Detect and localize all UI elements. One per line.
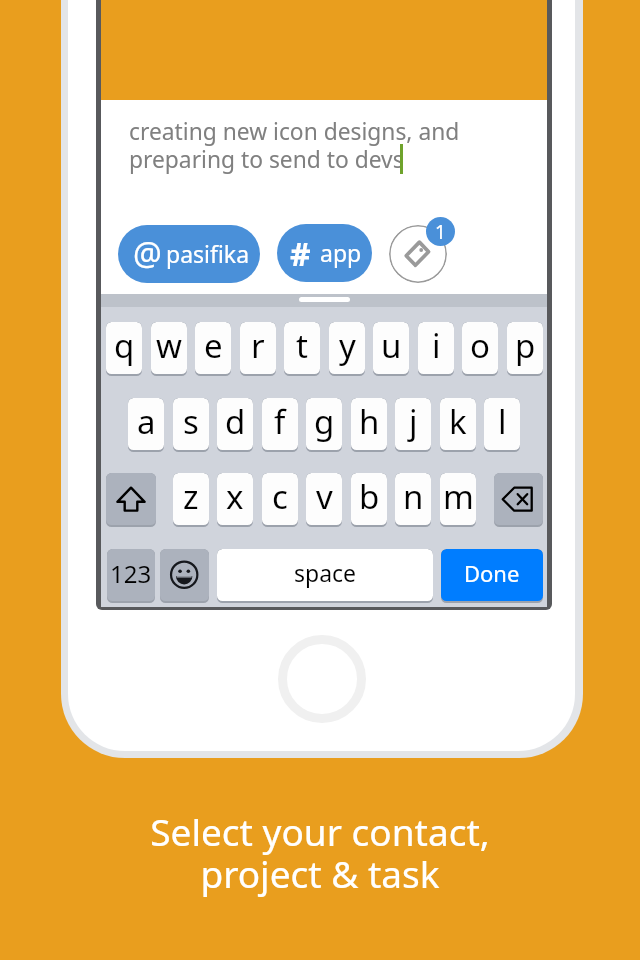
staticText: r	[251, 323, 265, 368]
staticText: creating new icon designs, and preparing…	[129, 116, 460, 175]
button[interactable]: y	[329, 322, 365, 376]
staticText: 123	[110, 557, 152, 590]
staticText: k	[449, 399, 467, 444]
button[interactable]: w	[151, 322, 187, 376]
button[interactable]: l	[484, 398, 520, 452]
staticText: y	[339, 323, 356, 368]
staticText: c	[272, 474, 288, 519]
staticText: @	[133, 232, 162, 276]
button[interactable]: #	[277, 224, 372, 282]
staticText: e	[204, 323, 223, 368]
staticText: q	[114, 323, 135, 368]
staticText: d	[225, 399, 246, 444]
button[interactable]: a	[128, 398, 164, 452]
staticText: x	[226, 474, 244, 519]
staticText: z	[183, 474, 199, 519]
button[interactable]: g	[306, 398, 342, 452]
staticText: m	[443, 474, 474, 519]
staticText: u	[381, 323, 402, 368]
staticText: g	[314, 399, 335, 444]
staticText: h	[359, 399, 380, 444]
staticText: p	[515, 323, 536, 368]
button[interactable]: @	[118, 225, 260, 283]
staticText: f	[274, 399, 286, 444]
staticText: pasifika	[166, 238, 250, 269]
staticText: v	[316, 474, 333, 519]
staticText: s	[183, 399, 199, 444]
button[interactable]: z	[173, 473, 209, 527]
staticText: Done	[464, 558, 520, 588]
staticText: 1	[435, 219, 446, 245]
button[interactable]: n	[395, 473, 431, 527]
button[interactable]: f	[262, 398, 298, 452]
button[interactable]: Shift	[106, 473, 156, 527]
button[interactable]: j	[395, 398, 431, 452]
staticText: t	[296, 323, 308, 368]
staticText: space	[294, 557, 357, 588]
staticText: Select your contact, project & task	[0, 806, 640, 899]
button[interactable]: c	[262, 473, 298, 527]
button[interactable]: h	[351, 398, 387, 452]
button[interactable]: q	[106, 322, 142, 376]
button[interactable]: b	[351, 473, 387, 527]
button[interactable]: o	[462, 322, 498, 376]
button[interactable]: u	[373, 322, 409, 376]
staticText: n	[403, 474, 424, 519]
button[interactable]: s	[173, 398, 209, 452]
staticText: j	[409, 399, 418, 444]
button[interactable]: v	[306, 473, 342, 527]
button[interactable]: d	[217, 398, 253, 452]
staticText: #	[290, 232, 311, 276]
button[interactable]: r	[240, 322, 276, 376]
staticText: app	[320, 237, 362, 268]
staticText: b	[359, 474, 380, 519]
button[interactable]: Done	[441, 549, 543, 603]
button[interactable]: Backspace	[494, 473, 543, 527]
button[interactable]: Add tag	[389, 225, 447, 283]
staticText: w	[156, 323, 182, 368]
button[interactable]: 123	[107, 549, 155, 603]
staticText: a	[137, 399, 156, 444]
button[interactable]: t	[284, 322, 320, 376]
button[interactable]: m	[440, 473, 476, 527]
staticText: i	[432, 323, 441, 368]
button[interactable]: p	[507, 322, 543, 376]
button[interactable]: e	[195, 322, 231, 376]
staticText: l	[498, 399, 507, 444]
button[interactable]: x	[217, 473, 253, 527]
button[interactable]: Emoji	[160, 549, 209, 603]
button[interactable]: k	[440, 398, 476, 452]
staticText: o	[470, 323, 490, 368]
button[interactable]: space	[217, 549, 433, 603]
button[interactable]: i	[418, 322, 454, 376]
